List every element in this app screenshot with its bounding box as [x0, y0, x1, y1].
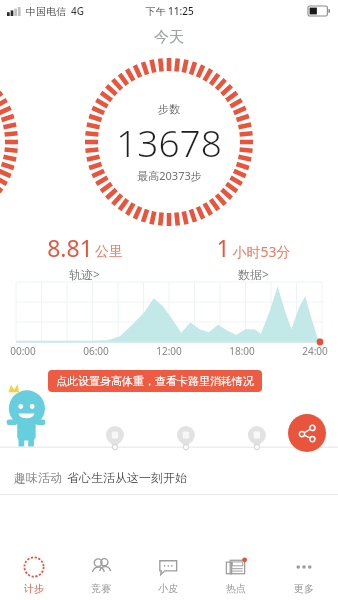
button[interactable]: 8.81	[0, 232, 169, 282]
staticText: 计步	[24, 582, 44, 595]
button[interactable]: 热点	[202, 550, 270, 600]
staticText: 趣味活动	[14, 470, 62, 485]
staticText: 06:00	[83, 344, 109, 358]
staticText: 省心生活从这一刻开始	[67, 470, 187, 485]
staticText: 12:00	[156, 344, 182, 358]
staticText: 下午 11:25	[145, 4, 194, 18]
staticText: 中国电信	[26, 5, 66, 18]
staticText: 4G	[71, 4, 84, 18]
staticText: 最高20373步	[137, 168, 202, 183]
staticText: 00:00	[10, 344, 36, 358]
button[interactable]: 小皮	[134, 550, 202, 600]
staticText: 公里	[95, 243, 123, 261]
staticText: 更多	[294, 582, 314, 595]
button[interactable]: 1	[169, 232, 338, 282]
staticText: 8.81	[47, 232, 93, 263]
staticText: 热点	[226, 582, 246, 595]
staticText: 数据>	[238, 266, 269, 282]
other: Mascot	[4, 386, 48, 448]
button[interactable]: 计步	[0, 550, 67, 600]
staticText: 轨迹>	[69, 266, 100, 282]
button[interactable]: 趣味活动	[0, 460, 338, 494]
staticText: 24:00	[302, 344, 328, 358]
staticText: 小时53分	[232, 242, 291, 261]
staticText: 今天	[154, 28, 184, 47]
staticText: 点此设置身高体重，查看卡路里消耗情况	[56, 374, 254, 388]
staticText: 小皮	[158, 582, 178, 595]
button[interactable]: Share	[288, 414, 326, 452]
staticText: 1	[216, 232, 230, 263]
button[interactable]: 竞赛	[67, 550, 134, 600]
button[interactable]: 点此设置身高体重，查看卡路里消耗情况	[48, 370, 262, 392]
staticText: 竞赛	[91, 582, 111, 595]
staticText: 步数	[158, 102, 180, 116]
staticText: 18:00	[229, 344, 255, 358]
button[interactable]: 更多	[270, 550, 338, 600]
staticText: 13678	[116, 117, 222, 167]
